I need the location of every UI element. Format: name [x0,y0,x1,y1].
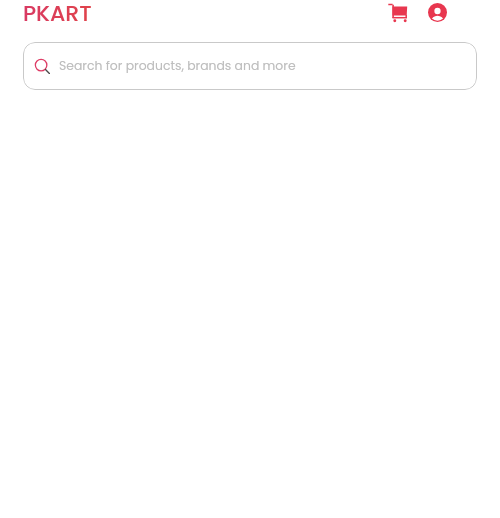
button[interactable]: Cart [382,0,414,29]
button[interactable]: Account [423,0,452,27]
button[interactable]: Search for products, brands and more [23,42,477,90]
staticText: PKART [23,0,92,29]
staticText: Search for products, brands and more [59,57,296,74]
button[interactable]: PKART [21,0,94,30]
